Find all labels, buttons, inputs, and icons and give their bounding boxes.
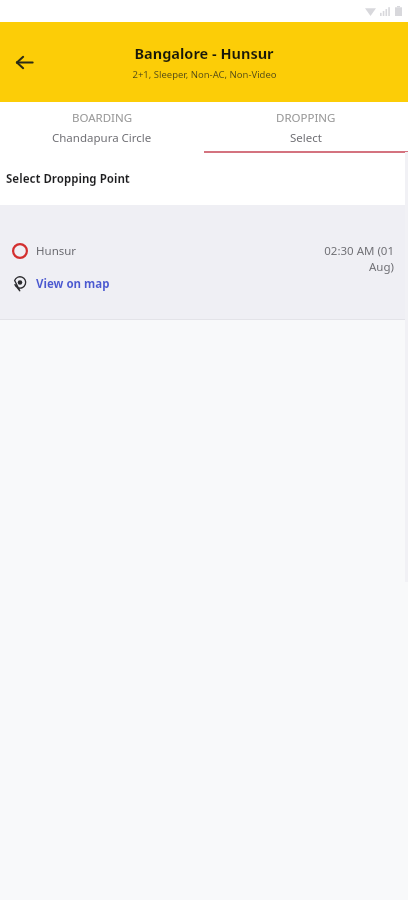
button[interactable]: View on map — [12, 276, 110, 292]
staticText: Select — [290, 130, 322, 146]
staticText: Chandapura Circle — [52, 130, 152, 146]
staticText: BOARDING — [72, 110, 133, 126]
staticText: View on map — [36, 276, 110, 292]
staticText: DROPPING — [276, 110, 336, 126]
staticText: 2+1, Sleeper, Non-AC, Non-Video — [132, 68, 277, 81]
button[interactable]: BOARDING — [0, 102, 204, 146]
staticText: Select Dropping Point — [6, 171, 130, 187]
staticText: Hunsur — [36, 243, 77, 259]
button[interactable]: DROPPING — [204, 102, 408, 146]
button[interactable]: Hunsur — [0, 205, 408, 320]
staticText: Bangalore - Hunsur — [134, 43, 274, 63]
staticText: 02:30 AM (01 Aug) — [308, 243, 394, 275]
button[interactable]: Back — [0, 38, 48, 86]
